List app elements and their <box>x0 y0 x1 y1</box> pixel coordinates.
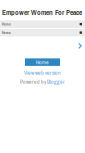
button[interactable]: View web version <box>24 69 61 76</box>
staticText: View web version <box>24 69 61 76</box>
button[interactable]: Home <box>0 29 85 36</box>
staticText: Powered by <box>20 78 46 85</box>
button[interactable]: Blogger <box>47 78 65 85</box>
staticText: Blogger <box>47 78 65 85</box>
button[interactable]: Home <box>25 58 60 66</box>
staticText: Home <box>2 22 11 27</box>
button[interactable]: Home <box>0 20 85 28</box>
staticText: Home <box>2 30 11 35</box>
button[interactable]: Older posts <box>75 41 84 50</box>
staticText: Empower Women For Peace <box>2 7 82 17</box>
staticText: Home <box>36 58 49 66</box>
